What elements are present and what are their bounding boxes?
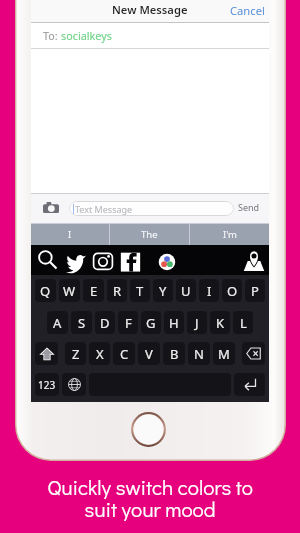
staticText: U [181, 282, 191, 300]
staticText: D [100, 314, 110, 332]
staticText: New Message [112, 2, 188, 17]
staticText: T [136, 282, 144, 300]
button[interactable]: V [138, 342, 160, 365]
button[interactable]: Q [35, 279, 56, 302]
button[interactable]: Shift [35, 342, 58, 365]
staticText: V [145, 345, 153, 363]
button[interactable]: Colors [158, 253, 176, 271]
button[interactable]: I [199, 279, 219, 302]
staticText: K [216, 314, 225, 332]
staticText: W [63, 282, 76, 300]
button[interactable]: O [222, 279, 242, 302]
staticText: G [146, 314, 156, 332]
button[interactable]: A [47, 311, 68, 334]
button[interactable]: Cancel [230, 3, 265, 18]
staticText: R [113, 282, 122, 300]
staticText: Z [72, 345, 80, 363]
staticText: 123 [38, 378, 56, 392]
staticText: O [227, 282, 238, 300]
staticText: H [169, 314, 179, 332]
staticText: I'm [223, 228, 237, 241]
button[interactable]: L [233, 311, 253, 334]
button[interactable]: J [187, 311, 207, 334]
button[interactable]: Text Message [69, 201, 234, 216]
staticText: socialkeys [61, 28, 112, 43]
staticText: M [218, 345, 230, 363]
button[interactable]: Home [131, 412, 166, 447]
button[interactable]: Send [238, 201, 260, 213]
button[interactable]: Backspace [242, 342, 265, 365]
button[interactable]: Camera [43, 202, 59, 213]
button[interactable]: R [107, 279, 127, 302]
button[interactable]: Instagram [93, 251, 113, 271]
staticText: Quickly switch colors to suit your mood [47, 473, 253, 522]
button[interactable]: Facebook [120, 251, 141, 272]
staticText: F [125, 314, 132, 332]
staticText: P [251, 282, 259, 300]
button[interactable]: T [130, 279, 150, 302]
staticText: Y [159, 282, 167, 300]
button[interactable]: P [245, 279, 265, 302]
staticText: N [194, 345, 204, 363]
button[interactable]: H [164, 311, 184, 334]
button[interactable]: E [83, 279, 104, 302]
staticText: C [120, 345, 129, 363]
button[interactable]: I [31, 223, 109, 246]
staticText: J [195, 314, 199, 332]
staticText: S [78, 314, 86, 332]
button[interactable]: To: [43, 23, 269, 48]
button[interactable]: Search [37, 249, 58, 270]
button[interactable]: D [95, 311, 115, 334]
staticText: Send [238, 201, 260, 213]
staticText: I [207, 282, 212, 300]
button[interactable]: N [188, 342, 210, 365]
button[interactable]: I'm [190, 223, 269, 246]
staticText: E [90, 282, 98, 300]
button[interactable]: Switch keyboard [62, 373, 86, 396]
staticText: A [53, 314, 62, 332]
button[interactable]: U [176, 279, 196, 302]
button[interactable]: Location [243, 250, 265, 272]
button[interactable]: F [118, 311, 138, 334]
staticText: Text Message [75, 203, 133, 215]
button[interactable]: C [113, 342, 135, 365]
button[interactable]: Return [234, 373, 265, 396]
button[interactable]: X [89, 342, 110, 365]
button[interactable]: Y [153, 279, 173, 302]
staticText: I [68, 228, 72, 241]
button[interactable]: M [213, 342, 235, 365]
staticText: The [141, 228, 158, 241]
button[interactable]: Twitter [66, 252, 86, 272]
button[interactable]: K [210, 311, 230, 334]
staticText: L [240, 314, 247, 332]
staticText: Cancel [230, 3, 265, 18]
button[interactable]: G [141, 311, 161, 334]
button[interactable]: 123 [35, 373, 59, 396]
staticText: To: [43, 28, 61, 43]
button[interactable]: Z [65, 342, 86, 365]
staticText: Q [40, 282, 51, 300]
staticText: B [170, 345, 179, 363]
button[interactable]: S [71, 311, 92, 334]
button[interactable]: The [110, 223, 189, 246]
button[interactable]: B [163, 342, 185, 365]
button[interactable]: W [59, 279, 80, 302]
staticText: X [96, 345, 104, 363]
